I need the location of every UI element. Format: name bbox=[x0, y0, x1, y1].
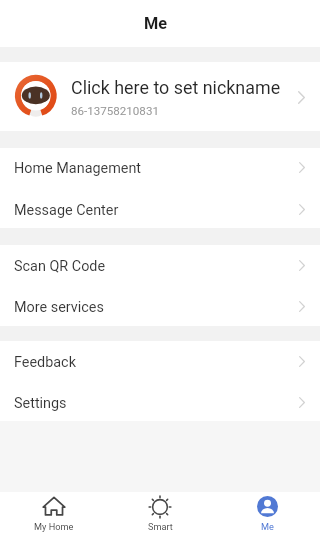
staticText: Message Center bbox=[14, 202, 119, 219]
button[interactable]: Feedback bbox=[0, 341, 320, 381]
button[interactable]: Scan QR Code bbox=[0, 245, 320, 286]
staticText: My Home bbox=[34, 521, 74, 532]
staticText: Smart bbox=[148, 521, 173, 532]
button[interactable]: Settings bbox=[0, 381, 320, 421]
staticText: Click here to set nickname bbox=[71, 77, 281, 98]
staticText: 86-13758210831 bbox=[71, 104, 159, 118]
staticText: More services bbox=[14, 299, 104, 316]
staticText: Scan QR Code bbox=[14, 258, 106, 275]
button[interactable]: Click here to set nickname bbox=[0, 62, 320, 131]
button[interactable]: More services bbox=[0, 286, 320, 326]
staticText: Me bbox=[144, 14, 168, 33]
staticText: Home Management bbox=[14, 160, 142, 177]
button[interactable]: Home Management bbox=[0, 148, 320, 188]
staticText: Me bbox=[261, 521, 274, 532]
staticText: Feedback bbox=[14, 354, 76, 371]
button[interactable]: Me bbox=[214, 492, 320, 533]
button[interactable]: Message Center bbox=[0, 188, 320, 228]
staticText: Settings bbox=[14, 395, 67, 412]
button[interactable]: My Home bbox=[0, 492, 107, 533]
button[interactable]: Smart bbox=[107, 492, 214, 533]
